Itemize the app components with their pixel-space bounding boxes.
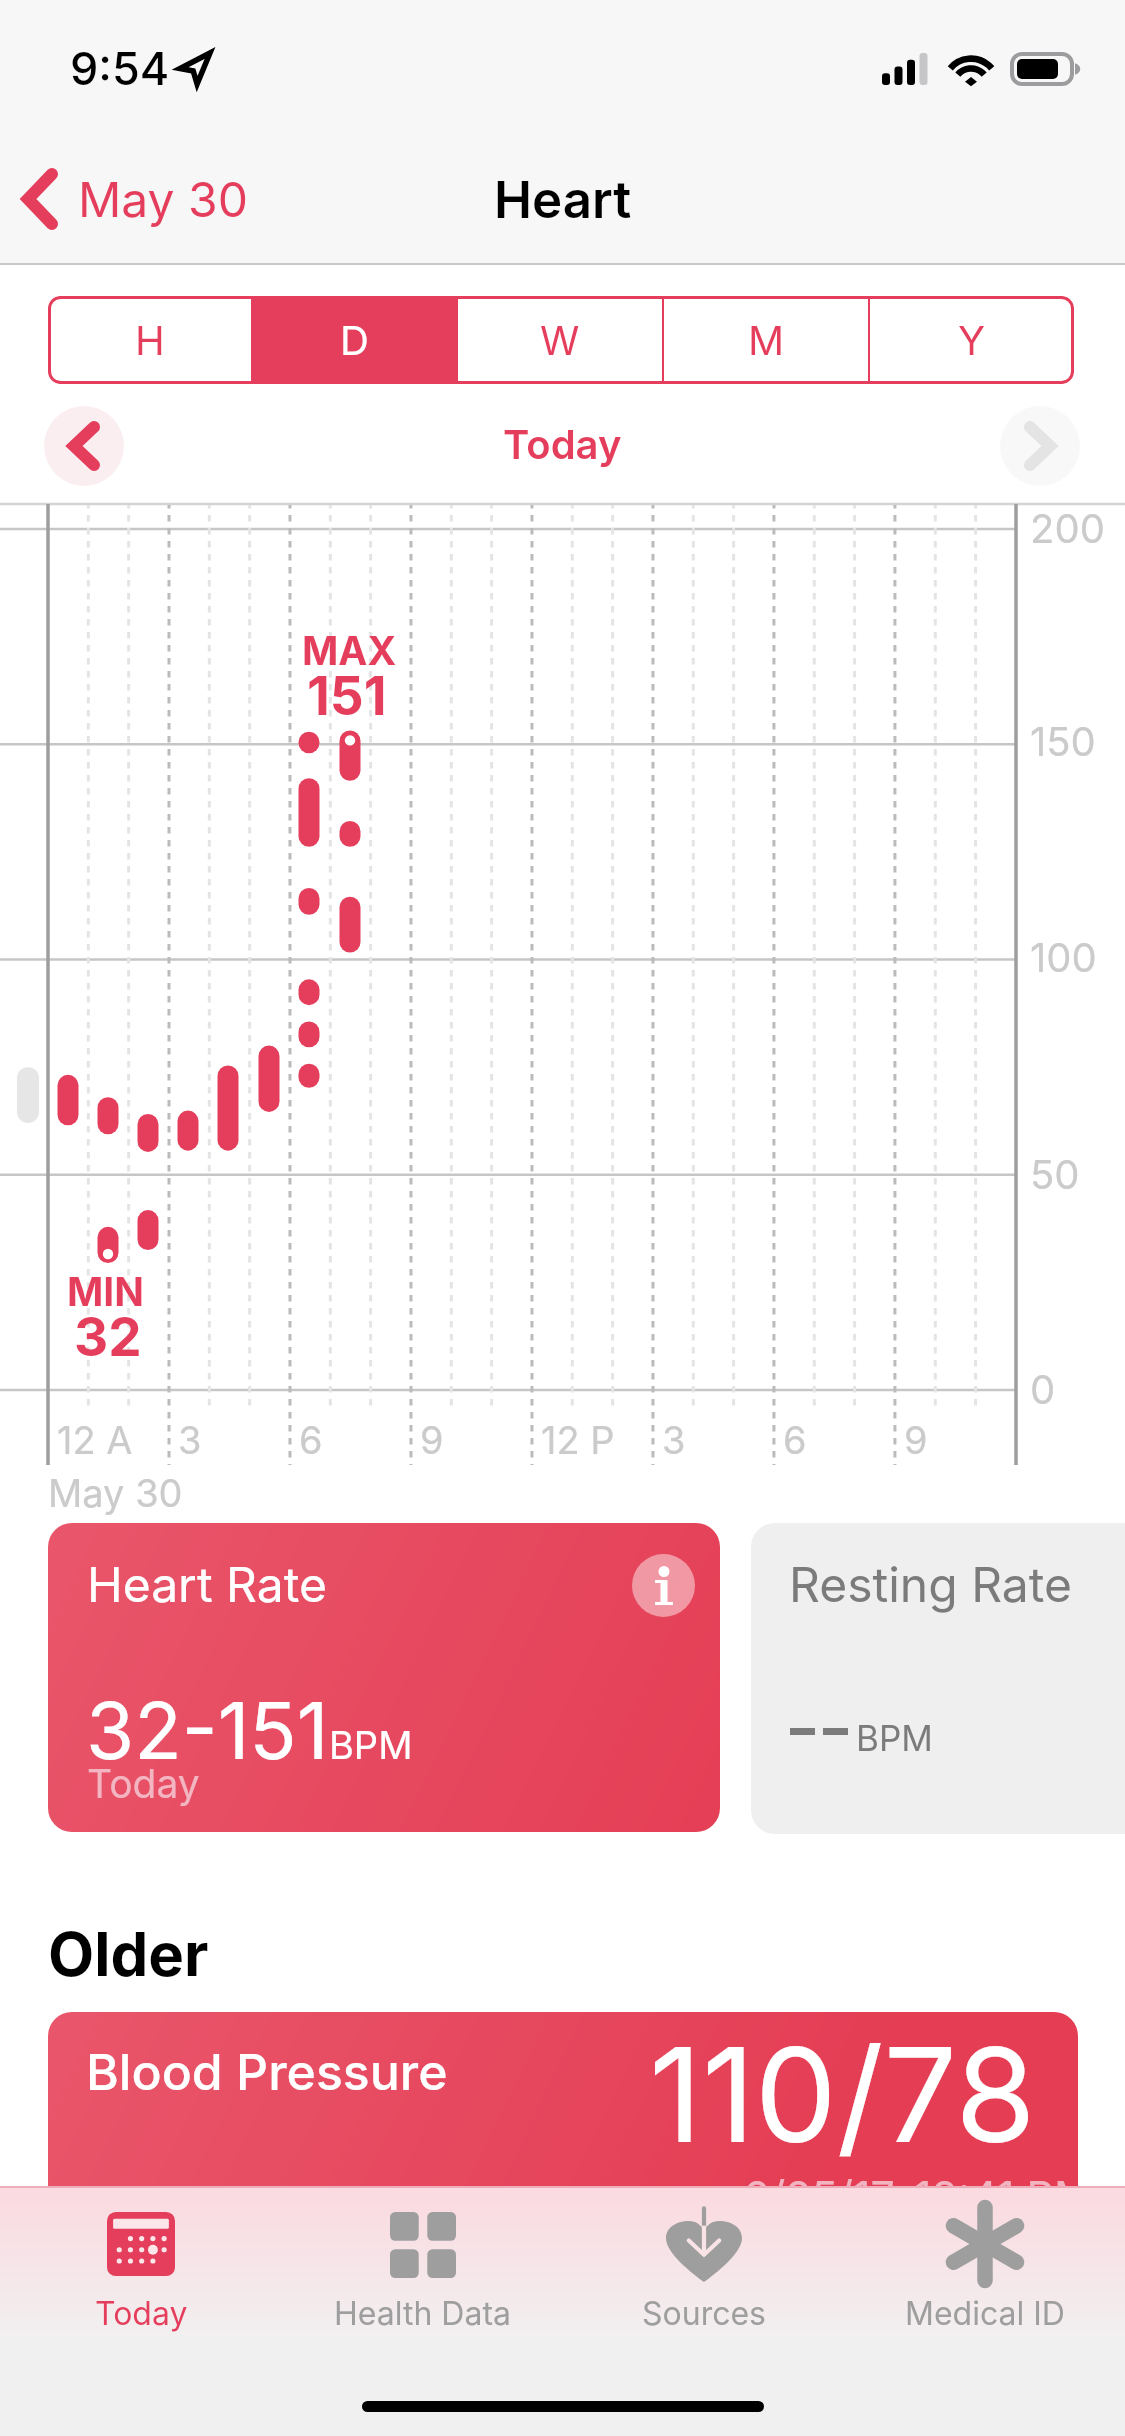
staticText: 3	[178, 1417, 202, 1463]
button[interactable]: Medical ID	[844, 2186, 1125, 2351]
staticText: 3	[662, 1417, 686, 1463]
staticText: Today	[87, 1760, 200, 1807]
staticText: Blood Pressure	[86, 2042, 448, 2102]
staticText: Sources	[642, 2294, 766, 2333]
staticText: Today	[95, 2294, 188, 2333]
staticText: 9	[904, 1417, 928, 1463]
staticText: BPM	[856, 1717, 933, 1759]
staticText: 12 A	[57, 1417, 133, 1463]
staticText: BPM	[329, 1722, 413, 1768]
staticText: M	[748, 316, 785, 364]
staticText: 9:54	[70, 41, 170, 95]
staticText: 150	[1030, 717, 1096, 765]
staticText: 100	[1030, 933, 1097, 981]
button[interactable]: Next day	[1000, 406, 1080, 486]
button[interactable]: W	[458, 296, 662, 384]
staticText: 6/25/17, 12:41 PM	[743, 2170, 1078, 2222]
button[interactable]: Info	[632, 1554, 695, 1617]
staticText: Medical ID	[905, 2294, 1065, 2333]
staticText: 50	[1030, 1150, 1080, 1198]
staticText: Resting Rate	[789, 1555, 1072, 1613]
button[interactable]: D	[253, 296, 456, 384]
staticText: Y	[958, 316, 986, 364]
button[interactable]: M	[664, 296, 868, 384]
staticText: W	[540, 316, 580, 364]
staticText: 32	[74, 1305, 142, 1369]
button[interactable]: Sources	[563, 2186, 844, 2351]
staticText: 0	[1030, 1365, 1056, 1413]
staticText: May 30	[48, 1470, 183, 1516]
staticText: 6	[783, 1417, 807, 1463]
staticText: H	[135, 316, 165, 364]
button[interactable]: Resting Rate	[751, 1523, 1125, 1834]
staticText: D	[340, 316, 369, 364]
staticText: Heart Rate	[87, 1555, 327, 1613]
staticText: 12 P	[541, 1417, 615, 1463]
staticText: Heart	[494, 169, 632, 231]
button[interactable]: Today	[0, 2186, 282, 2351]
button[interactable]: H	[48, 296, 251, 384]
staticText: May 30	[78, 170, 249, 228]
staticText: 32-151	[86, 1683, 329, 1777]
staticText: Older	[48, 1918, 209, 1991]
staticText: MIN	[67, 1268, 145, 1315]
staticText: 9	[420, 1417, 444, 1463]
button[interactable]: Heart Rate	[48, 1523, 720, 1832]
staticText: 6	[299, 1417, 323, 1463]
button[interactable]: Blood Pressure	[48, 2012, 1078, 2292]
button[interactable]: Health Data	[282, 2186, 563, 2351]
staticText: 151	[307, 664, 387, 728]
staticText: MAX	[302, 627, 397, 674]
staticText: 200	[1030, 504, 1105, 552]
button[interactable]: Y	[870, 296, 1074, 384]
staticText: 110/78	[649, 2016, 1036, 2173]
staticText: Today	[503, 420, 622, 468]
button[interactable]: May 30	[0, 156, 265, 242]
staticText: Health Data	[334, 2294, 511, 2333]
button[interactable]: Previous day	[44, 406, 124, 486]
